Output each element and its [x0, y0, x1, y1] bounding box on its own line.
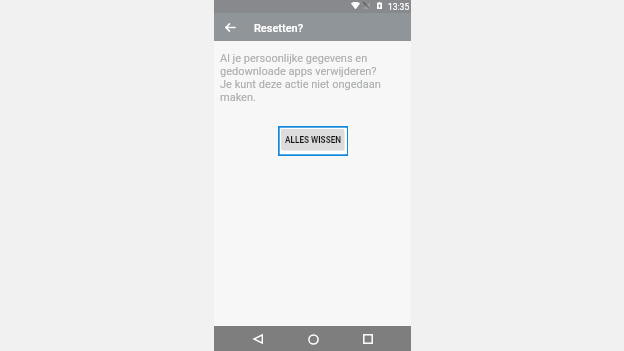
button[interactable]: Recent apps — [357, 328, 379, 350]
button[interactable]: Back — [247, 328, 269, 350]
staticText: Al je persoonlijke gegevens en gedownloa… — [220, 52, 388, 104]
staticText: ALLES WISSEN — [285, 135, 342, 145]
button[interactable]: Back — [219, 16, 241, 38]
staticText: 13:35 — [388, 2, 410, 12]
button[interactable]: ALLES WISSEN — [278, 126, 348, 156]
button[interactable]: Home — [302, 328, 324, 350]
staticText: Resetten? — [254, 22, 304, 35]
